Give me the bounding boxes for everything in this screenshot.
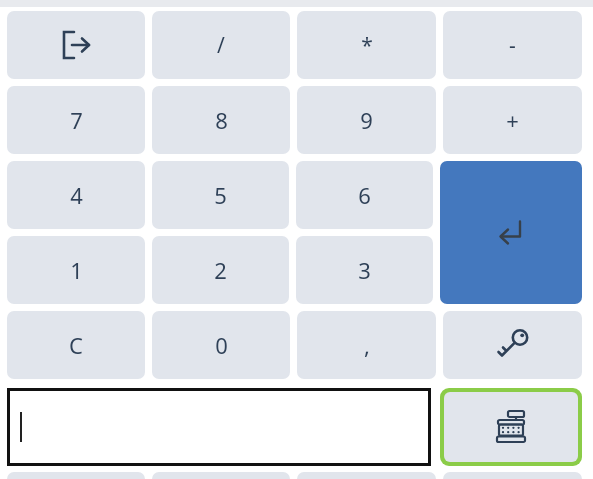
staticText: * bbox=[361, 31, 373, 60]
button[interactable]: / bbox=[152, 11, 290, 79]
staticText: 5 bbox=[214, 180, 227, 210]
button[interactable]: Unlock bbox=[443, 311, 582, 379]
staticText: 0 bbox=[215, 330, 228, 360]
button[interactable] bbox=[297, 472, 436, 479]
button[interactable]: 0 bbox=[152, 311, 290, 379]
staticText: 6 bbox=[358, 180, 371, 210]
button[interactable]: Logout bbox=[7, 11, 145, 79]
staticText: C bbox=[69, 330, 83, 360]
button[interactable] bbox=[152, 472, 290, 479]
button[interactable] bbox=[7, 388, 431, 466]
button[interactable]: 6 bbox=[296, 161, 433, 229]
staticText: 9 bbox=[360, 105, 373, 135]
button[interactable]: Cash register bbox=[444, 392, 578, 462]
staticText: 4 bbox=[70, 180, 83, 210]
button[interactable] bbox=[7, 472, 145, 479]
button[interactable]: 9 bbox=[297, 86, 436, 154]
staticText: + bbox=[506, 105, 519, 135]
staticText: / bbox=[217, 31, 225, 60]
staticText: 1 bbox=[70, 255, 83, 285]
staticText: 3 bbox=[358, 255, 371, 285]
button[interactable] bbox=[443, 472, 582, 479]
button[interactable]: 7 bbox=[7, 86, 145, 154]
button[interactable]: 2 bbox=[152, 236, 289, 304]
button[interactable]: 5 bbox=[152, 161, 289, 229]
button[interactable]: , bbox=[297, 311, 436, 379]
staticText: 8 bbox=[215, 105, 228, 135]
button[interactable]: 4 bbox=[7, 161, 145, 229]
staticText: 2 bbox=[214, 255, 227, 285]
button[interactable]: Enter bbox=[440, 161, 582, 304]
button[interactable]: C bbox=[7, 311, 145, 379]
button[interactable]: - bbox=[443, 11, 582, 79]
staticText: 7 bbox=[70, 105, 83, 135]
staticText: - bbox=[509, 31, 516, 60]
button[interactable]: 8 bbox=[152, 86, 290, 154]
button[interactable]: 1 bbox=[7, 236, 145, 304]
button[interactable]: 3 bbox=[296, 236, 433, 304]
button[interactable]: + bbox=[443, 86, 582, 154]
staticText: , bbox=[364, 330, 370, 360]
button[interactable]: * bbox=[297, 11, 436, 79]
